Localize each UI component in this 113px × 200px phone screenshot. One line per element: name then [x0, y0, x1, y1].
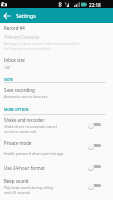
button[interactable]: Beep sound: [0, 178, 113, 198]
staticText: 22:18: [89, 2, 101, 8]
staticText: NOTE: [4, 77, 14, 82]
button[interactable]: Toggle Use 24-hour format: [86, 161, 104, 172]
staticText: Beep sound: [4, 178, 29, 184]
button[interactable]: Toggle Shake and recorder: [86, 119, 104, 130]
staticText: Private mode: [4, 140, 32, 146]
staticText: Inbox size: [4, 57, 25, 63]
staticText: Settings: [16, 12, 36, 19]
button[interactable]: Toggle Beep sound: [86, 180, 104, 191]
button[interactable]: Inbox size: [0, 57, 113, 71]
button[interactable]: Private mode: [0, 140, 113, 158]
button[interactable]: Primary Contacts: [0, 34, 113, 56]
staticText: Enable password when open this app: [4, 151, 64, 156]
staticText: 100: [4, 65, 10, 70]
staticText: Use 24-hour format: [4, 165, 45, 171]
staticText: Play beep sound during calling each 30 s…: [4, 185, 54, 195]
button[interactable]: Use 24-hour format: [0, 165, 113, 177]
staticText: MORE OPTION: [4, 107, 29, 112]
button[interactable]: Shake and recorder: [0, 117, 113, 137]
staticText: Manage contacts and the call record avai…: [4, 41, 81, 51]
staticText: Record #4: [4, 25, 25, 31]
button[interactable]: Toggle Private mode: [86, 140, 104, 151]
staticText: Shake and recorder: [4, 117, 45, 123]
button[interactable]: Record #4: [0, 25, 113, 33]
staticText: Primary Contacts: [4, 34, 40, 40]
button[interactable]: Save recording: [0, 87, 113, 101]
button[interactable]: Back: [0, 9, 13, 22]
staticText: Save recording: [4, 87, 35, 93]
staticText: Shake device to automatic cancel record …: [4, 124, 57, 134]
staticText: Automatic save to favorites: [4, 94, 48, 99]
